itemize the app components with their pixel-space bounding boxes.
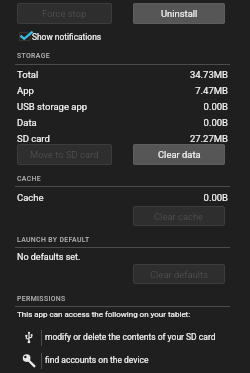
staticText: Uninstall	[161, 8, 198, 19]
staticText: SD card	[17, 133, 50, 144]
staticText: 27.27MB	[0, 133, 228, 144]
button[interactable]: Force stop	[17, 3, 112, 24]
staticText: Clear data	[158, 149, 201, 160]
staticText: USB storage app	[17, 101, 88, 112]
staticText: 0.00B	[0, 192, 228, 203]
staticText: 34.73MB	[0, 69, 228, 80]
button[interactable]: SD card	[0, 129, 250, 145]
button[interactable]: Clear defaults	[133, 264, 225, 284]
button[interactable]: Total	[0, 65, 250, 81]
staticText: 0.00B	[0, 101, 228, 112]
staticText: CACHE	[17, 175, 42, 183]
staticText: App	[17, 85, 34, 96]
staticText: Move to SD card	[30, 149, 99, 160]
button[interactable]: Move to SD card	[17, 144, 112, 165]
staticText: PERMISSIONS	[17, 295, 66, 303]
staticText: 0.00B	[0, 117, 228, 128]
staticText: Clear cache	[154, 211, 204, 222]
staticText: LAUNCH BY DEFAULT	[17, 236, 90, 244]
button[interactable]: App	[0, 81, 250, 97]
button[interactable]: USB storage permission	[0, 328, 250, 350]
staticText: Force stop	[42, 8, 87, 19]
staticText: This app can access the following on you…	[17, 310, 191, 319]
button[interactable]: Uninstall	[133, 3, 225, 24]
button[interactable]: USB storage app	[0, 97, 250, 113]
staticText: Total	[17, 69, 39, 80]
button[interactable]: Data	[0, 113, 250, 129]
button[interactable]: Clear cache	[133, 206, 225, 226]
staticText: STORAGE	[17, 52, 50, 60]
button[interactable]: Cache	[0, 188, 250, 204]
staticText: Show notifications	[32, 32, 102, 42]
staticText: Data	[17, 117, 37, 128]
button[interactable]: Show notifications	[17, 29, 109, 44]
staticText: modify or delete the contents of your SD…	[45, 332, 216, 342]
button[interactable]: Clear data	[133, 144, 225, 165]
staticText: No defaults set.	[17, 252, 81, 263]
staticText: 7.47MB	[0, 85, 228, 96]
staticText: Cache	[17, 192, 44, 203]
button[interactable]: Accounts permission	[0, 351, 250, 373]
staticText: find accounts on the device	[45, 355, 149, 365]
staticText: Clear defaults	[150, 269, 209, 280]
